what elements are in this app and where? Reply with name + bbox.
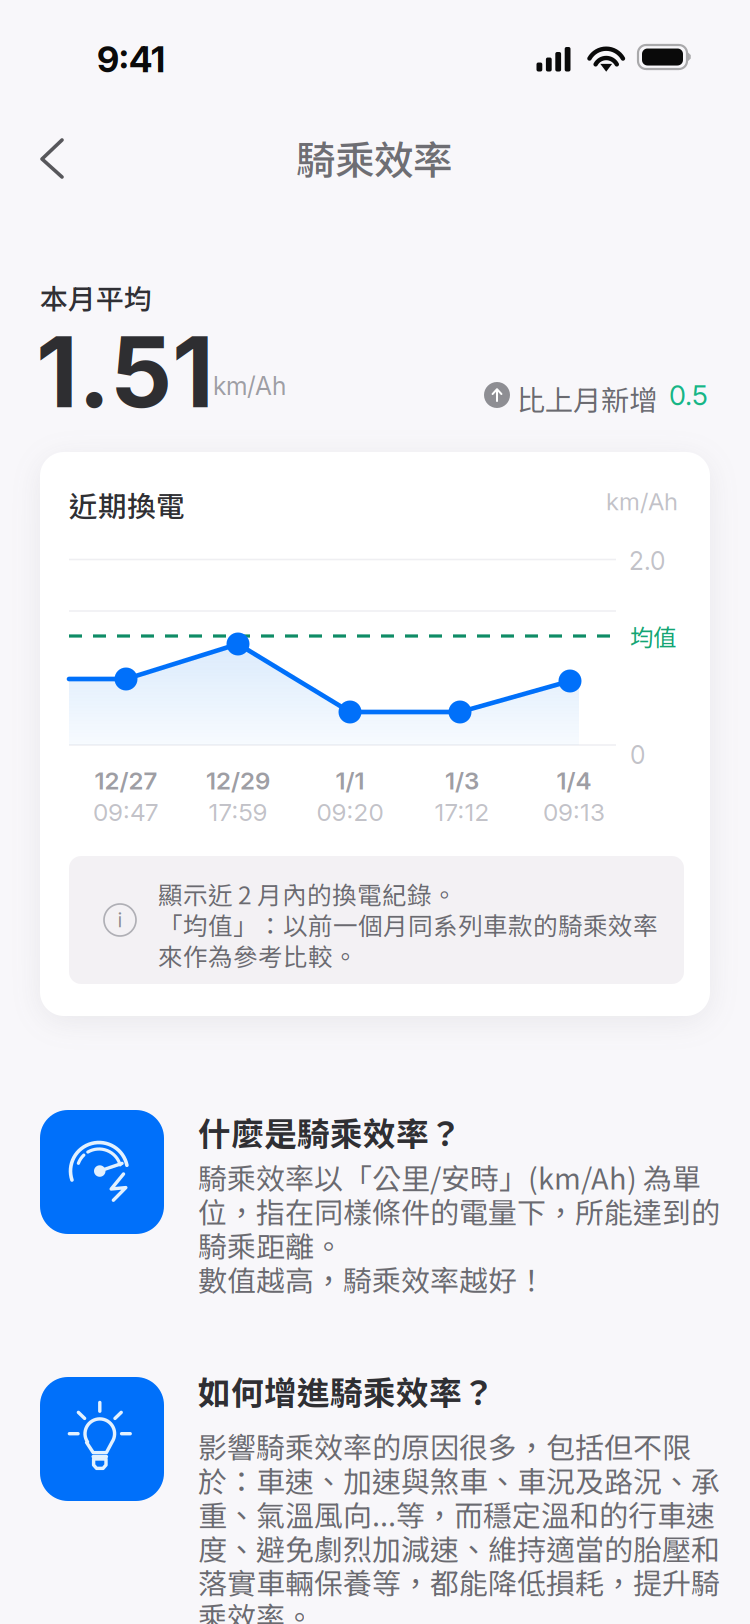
- staticText: 1/1: [335, 766, 364, 795]
- staticText: 近期換電: [69, 484, 185, 525]
- staticText: 09:47: [93, 797, 159, 827]
- staticText: 17:59: [208, 797, 267, 827]
- staticText: 12/27: [94, 766, 157, 795]
- staticText: 騎乘效率以「公里/安時」(km/Ah) 為單 位，指在同樣條件的電量下，所能達到…: [198, 1160, 720, 1296]
- staticText: 0: [630, 740, 645, 770]
- staticText: 2.0: [629, 546, 665, 576]
- button[interactable]: Back: [0, 104, 108, 212]
- staticText: 比上月新增: [517, 378, 657, 419]
- staticText: 騎乘效率: [296, 129, 452, 186]
- staticText: 本月平均: [40, 277, 152, 317]
- staticText: 1/3: [445, 766, 479, 795]
- staticText: 顯示近 2 月內的換電紀錄。 「均值」：以前一個月同系列車款的騎乘效率 來作為參…: [158, 878, 658, 971]
- staticText: 1.51: [36, 313, 214, 431]
- staticText: 09:20: [316, 797, 383, 827]
- staticText: i: [117, 908, 122, 932]
- staticText: 09:13: [543, 797, 605, 827]
- staticText: km/Ah: [213, 371, 286, 401]
- staticText: 均值: [630, 619, 676, 653]
- staticText: 0.5: [669, 379, 708, 412]
- staticText: 1/4: [556, 766, 591, 795]
- staticText: 如何增進騎乘效率？: [198, 1367, 495, 1414]
- staticText: 17:12: [434, 797, 489, 827]
- staticText: 12/29: [206, 766, 270, 795]
- staticText: km/Ah: [606, 487, 678, 516]
- staticText: 9:41: [97, 38, 165, 81]
- staticText: 什麼是騎乘效率？: [198, 1108, 462, 1155]
- staticText: 影響騎乘效率的原因很多，包括但不限 於：車速、加速與煞車、車況及路況、承 重、氣…: [198, 1429, 720, 1624]
